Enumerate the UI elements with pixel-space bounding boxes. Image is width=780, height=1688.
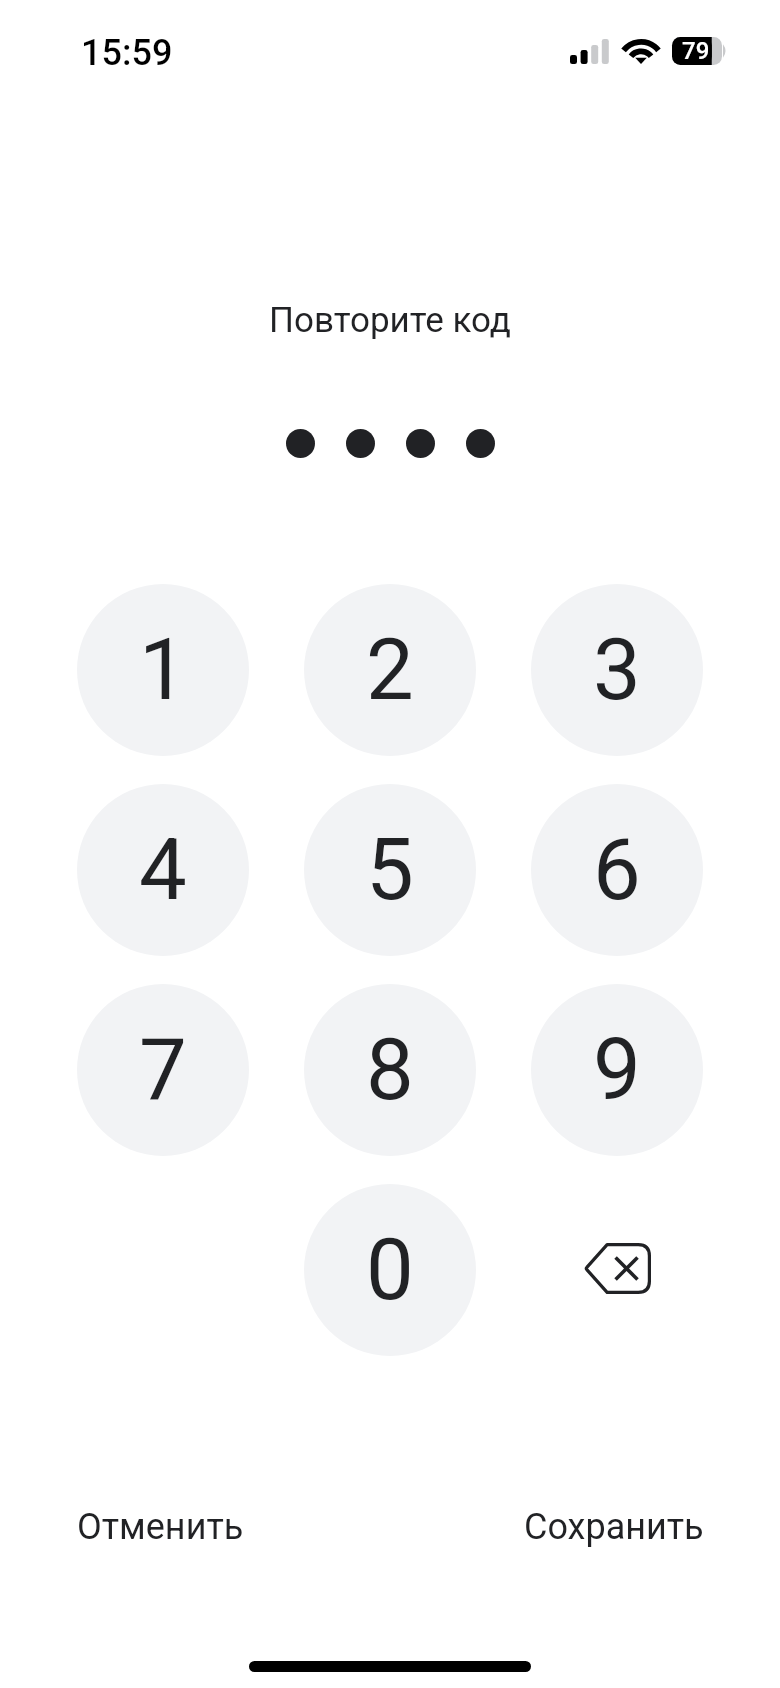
staticText: 7	[139, 1020, 187, 1120]
button[interactable]: 6	[531, 784, 703, 956]
staticText: 1	[139, 620, 187, 720]
staticText: 2	[366, 620, 414, 720]
button[interactable]: 1	[77, 584, 249, 756]
staticText: 8	[366, 1020, 414, 1120]
staticText: Повторите код	[0, 300, 780, 341]
staticText: 6	[593, 820, 641, 920]
staticText: 79	[682, 37, 710, 65]
staticText: 9	[593, 1020, 641, 1120]
button[interactable]: 9	[531, 984, 703, 1156]
staticText: 0	[366, 1220, 414, 1320]
staticText: Сохранить	[524, 1506, 704, 1548]
button[interactable]: 3	[531, 584, 703, 756]
staticText: 4	[139, 820, 187, 920]
staticText: 5	[366, 820, 414, 920]
staticText: 3	[593, 620, 641, 720]
button[interactable]: 8	[304, 984, 476, 1156]
button[interactable]: 5	[304, 784, 476, 956]
button[interactable]: 2	[304, 584, 476, 756]
button[interactable]: 0	[304, 1184, 476, 1356]
staticText: 15:59	[81, 32, 173, 74]
staticText: Отменить	[77, 1506, 244, 1548]
button[interactable]: 4	[77, 784, 249, 956]
button[interactable]: Backspace	[531, 1184, 703, 1356]
button[interactable]: Отменить	[73, 1494, 248, 1560]
button[interactable]: Сохранить	[520, 1494, 708, 1560]
button[interactable]: 7	[77, 984, 249, 1156]
